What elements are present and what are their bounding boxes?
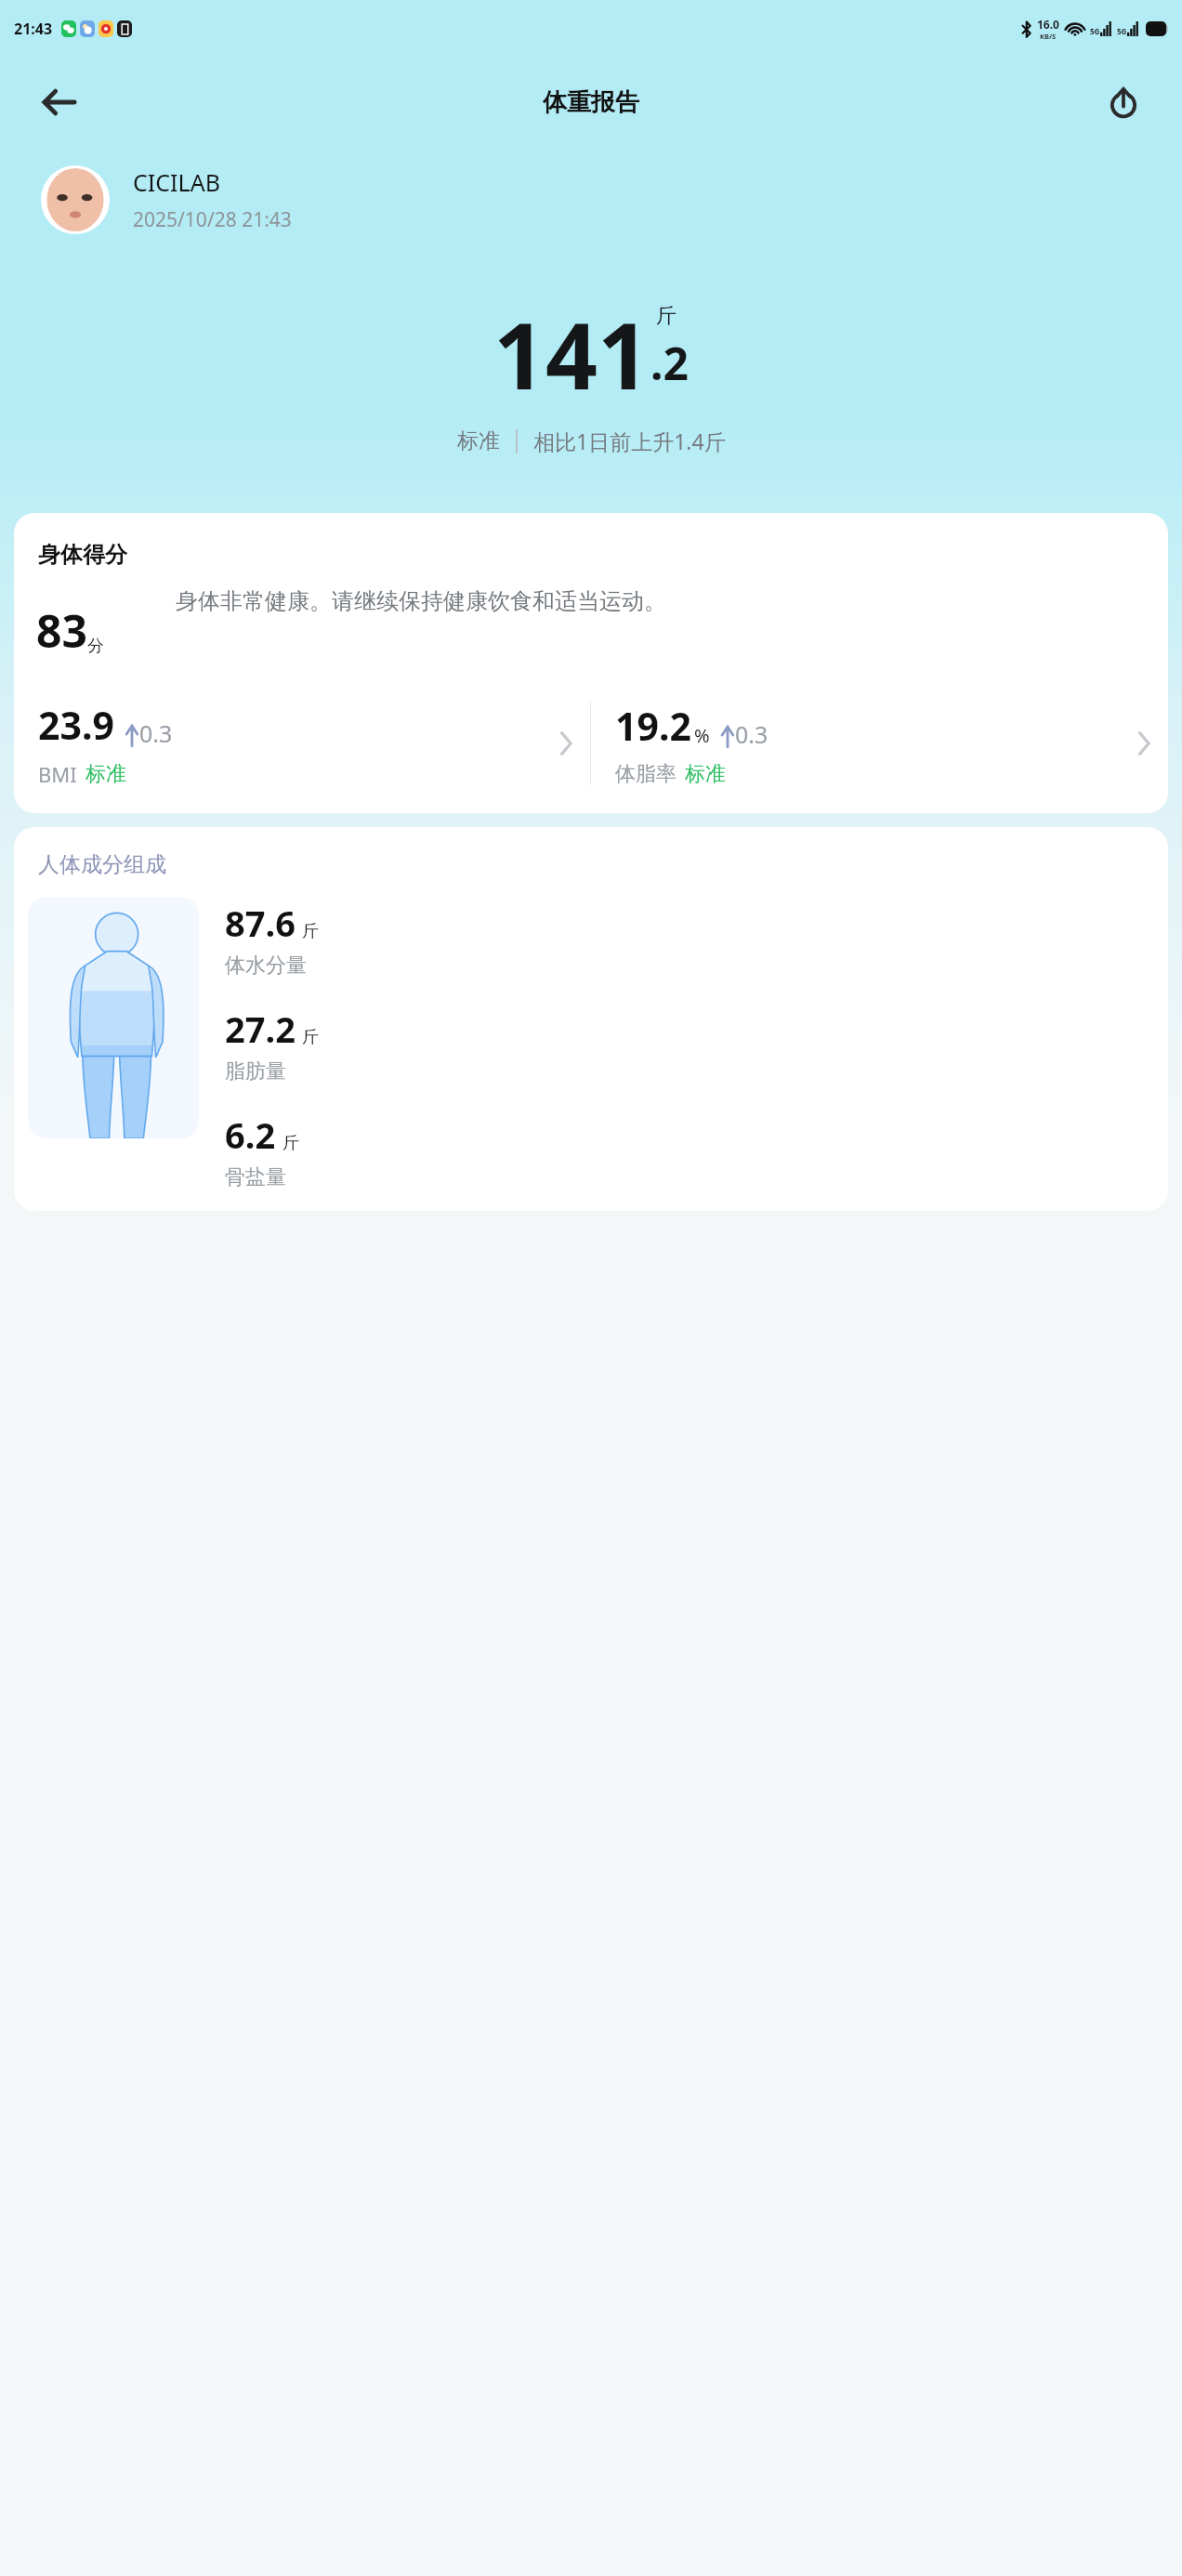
staticText: 141	[493, 292, 650, 415]
staticText: 21:43	[14, 19, 53, 39]
staticText: 5G	[1090, 26, 1100, 36]
staticText: 标准	[457, 427, 500, 454]
button[interactable]: CICILAB	[41, 165, 1182, 234]
staticText: 斤	[302, 1027, 319, 1048]
button[interactable]: 19.2	[591, 689, 1168, 798]
staticText: 0.3	[139, 717, 173, 749]
staticText: 0.3	[735, 718, 768, 750]
staticText: 16.0	[1037, 17, 1059, 32]
button[interactable]: Back	[30, 72, 89, 132]
staticText: 5G	[1117, 26, 1127, 36]
staticText: 斤	[656, 303, 676, 329]
button[interactable]: Share	[1097, 75, 1150, 129]
staticText: 体水分量	[225, 953, 307, 979]
staticText: 27.2	[225, 1005, 295, 1053]
button[interactable]: 23.9	[14, 689, 590, 798]
staticText: 6.2	[225, 1111, 276, 1159]
staticText: 23.9	[38, 699, 114, 751]
staticText: BMI	[38, 760, 77, 788]
staticText: 2025/10/28 21:43	[133, 206, 292, 233]
staticText: CICILAB	[133, 166, 220, 198]
staticText: 斤	[282, 1133, 299, 1154]
staticText: .2	[650, 333, 689, 393]
staticText: 标准	[685, 761, 726, 787]
staticText: KB/S	[1040, 32, 1057, 41]
staticText: 脂肪量	[225, 1058, 286, 1084]
staticText: 87.6	[225, 899, 295, 947]
staticText: 身体得分	[38, 541, 127, 569]
staticText: 体脂率	[615, 761, 676, 787]
staticText: 斤	[302, 921, 319, 942]
staticText: 相比1日前上升1.4斤	[533, 427, 726, 455]
staticText: 体重报告	[543, 87, 639, 118]
staticText: 19.2	[615, 700, 691, 752]
staticText: 人体成分组成	[38, 851, 166, 878]
staticText: 83	[36, 600, 87, 661]
staticText: %	[694, 723, 710, 748]
staticText: 分	[87, 636, 104, 657]
staticText: 标准	[85, 761, 126, 787]
staticText: 身体非常健康。请继续保持健康饮食和适当运动。	[176, 587, 666, 615]
staticText: 骨盐量	[225, 1164, 286, 1190]
